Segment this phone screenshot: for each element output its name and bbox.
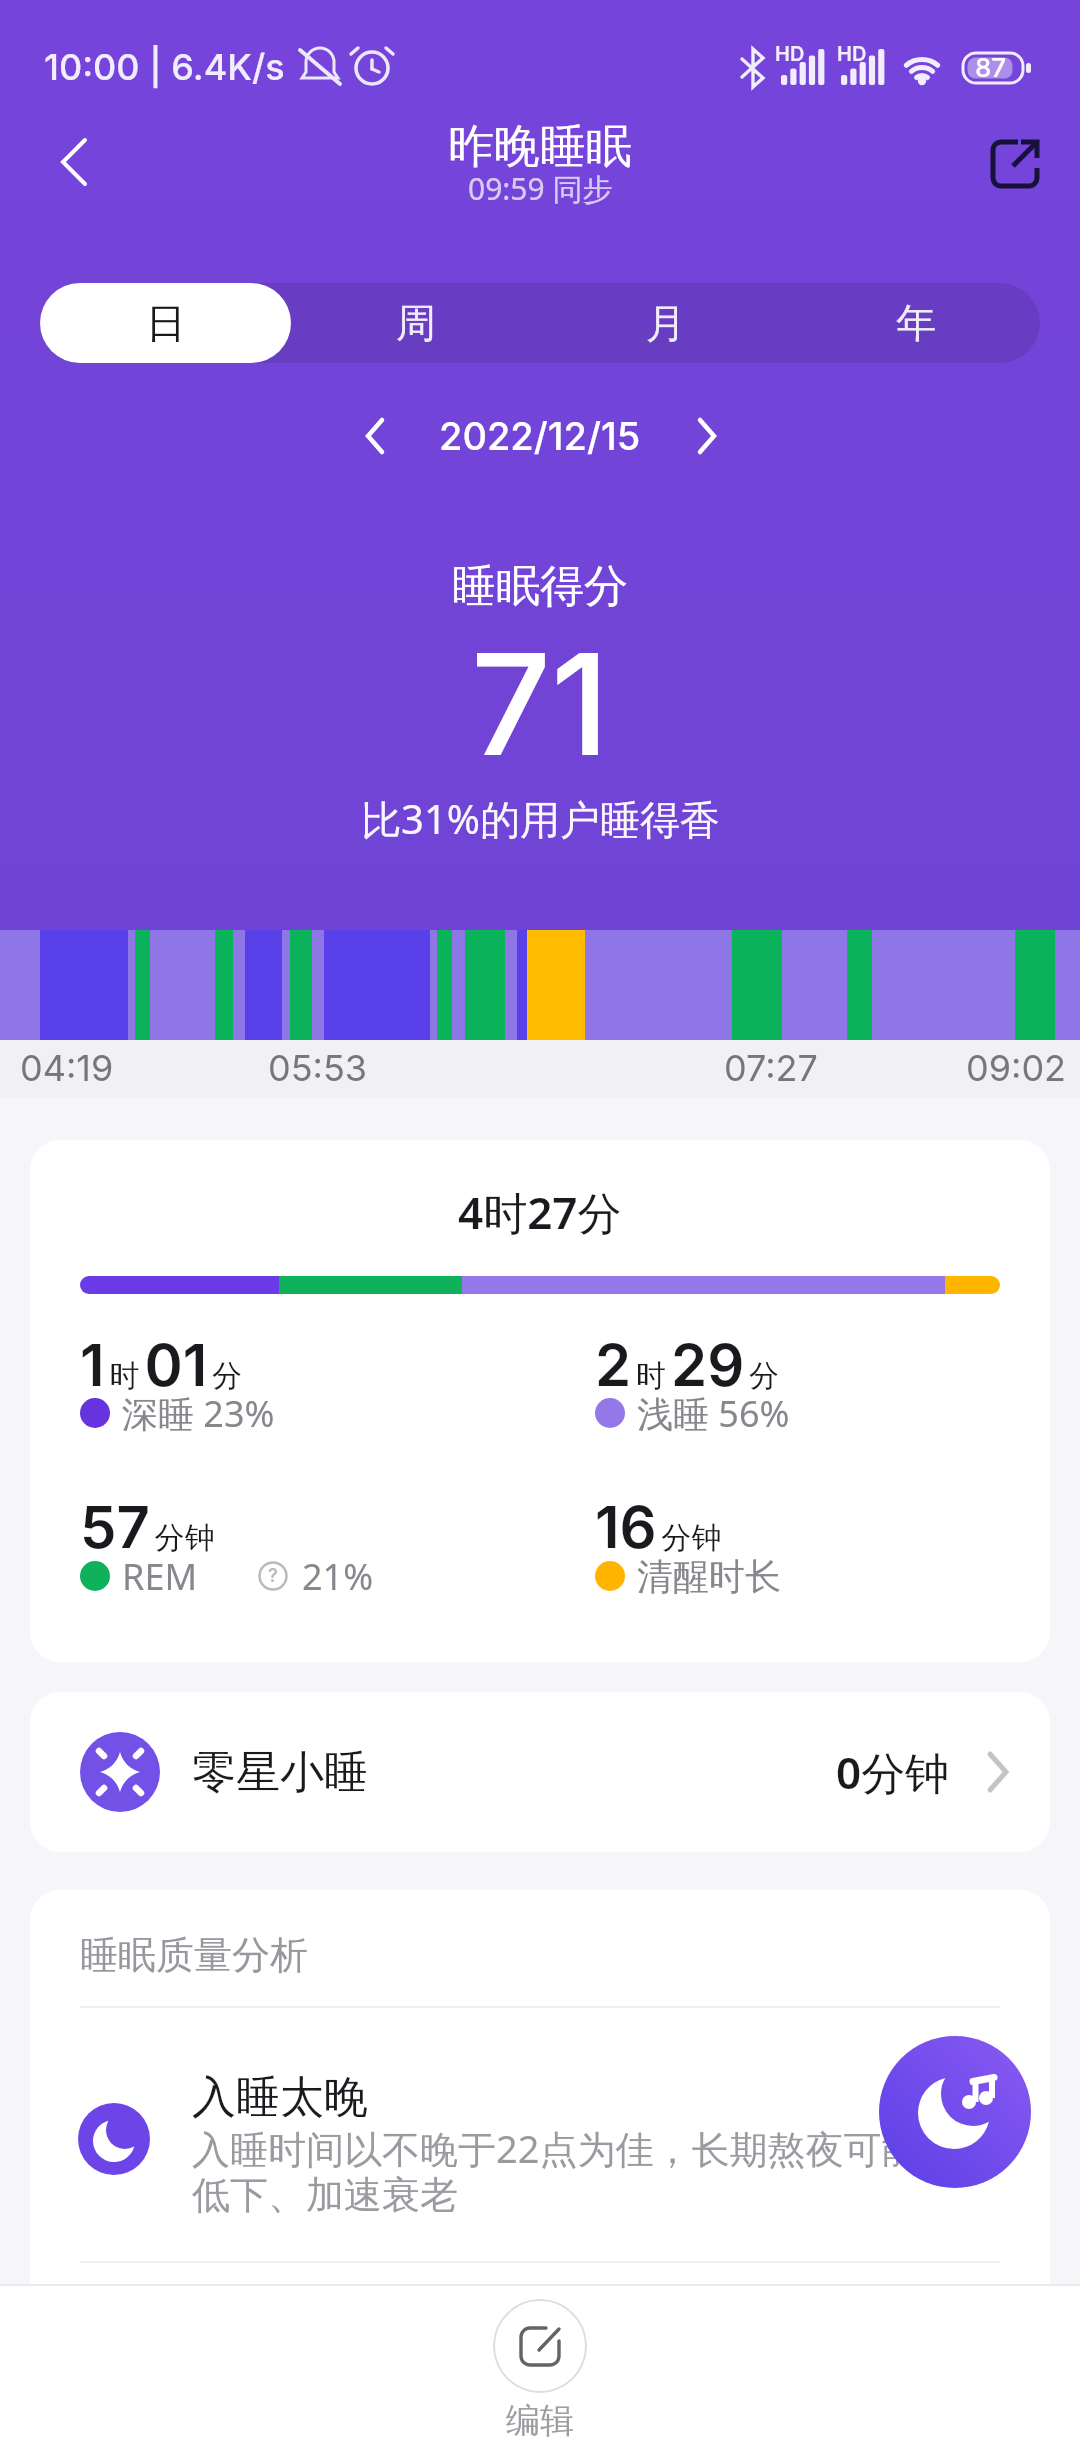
staticText: 日 [146, 298, 186, 348]
staticText: 16 分钟 [595, 1492, 727, 1554]
button[interactable]: 年 [791, 283, 1041, 363]
staticText: 2 时 29 分 [595, 1330, 785, 1392]
staticText: 周 [396, 298, 436, 348]
button[interactable] [352, 412, 400, 460]
staticText: 10:00 | 6.4K/s [44, 45, 285, 89]
button[interactable]: 月 [541, 283, 791, 363]
staticText: 4时27分 [458, 1182, 622, 1242]
staticText: 睡眠质量分析 [80, 1931, 308, 1979]
button[interactable]: 周 [291, 283, 541, 363]
button[interactable] [879, 2036, 1031, 2188]
staticText: 71 [471, 619, 610, 788]
staticText: 04:19 [20, 1046, 114, 1090]
button[interactable] [30, 1692, 1050, 1852]
staticText: 昨晚睡眠 [448, 118, 632, 176]
staticText: ? [268, 1565, 278, 1587]
staticText: 入睡太晚 [192, 2070, 368, 2125]
staticText: 07:27 [724, 1046, 818, 1090]
button[interactable] [493, 2299, 587, 2393]
staticText: 零星小睡 [192, 1745, 368, 1800]
staticText: 月 [646, 298, 686, 348]
staticText: 低下、加速衰老 [192, 2171, 458, 2219]
staticText: 入睡时间以不晚于22点为佳，长期熬夜可能引起 [192, 2122, 996, 2174]
staticText: 21% [302, 1552, 374, 1601]
staticText: 0分钟 [836, 1742, 950, 1802]
staticText: 2022/12/15 [439, 413, 641, 459]
staticText: HD [775, 42, 805, 66]
staticText: 1 时 01 分 [80, 1330, 248, 1392]
staticText: 57 分钟 [80, 1492, 220, 1554]
staticText: 清醒时长 [637, 1554, 781, 1599]
staticText: 睡眠得分 [452, 559, 628, 614]
staticText: 05:53 [268, 1046, 368, 1090]
staticText: 09:02 [966, 1046, 1067, 1090]
staticText: HD [837, 42, 867, 66]
button[interactable] [40, 130, 110, 194]
staticText: 年 [896, 298, 936, 348]
staticText: 编辑 [506, 2399, 574, 2442]
staticText: 09:59 同步 [468, 168, 613, 209]
button[interactable] [682, 412, 730, 460]
staticText: 深睡 23% [122, 1389, 275, 1438]
staticText: 比31%的用户睡得香 [361, 791, 720, 846]
button[interactable] [985, 132, 1047, 194]
button[interactable]: 日 [40, 283, 291, 363]
staticText: 87 [975, 52, 1007, 83]
staticText: 浅睡 56% [637, 1389, 790, 1438]
staticText: REM [122, 1552, 198, 1601]
